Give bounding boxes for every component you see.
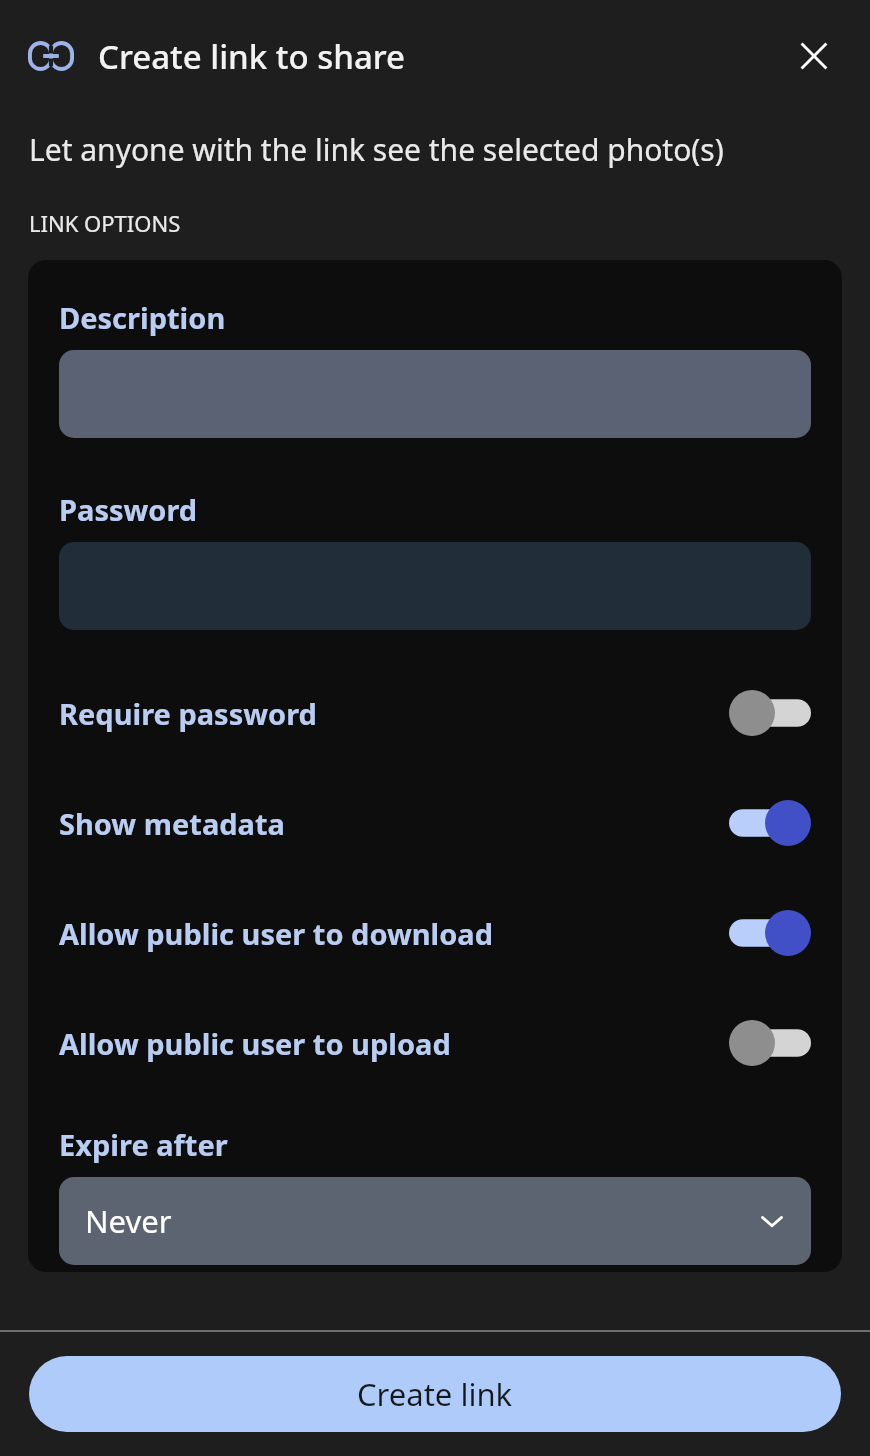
other: Link (28, 41, 74, 71)
staticText: Never (85, 1200, 172, 1242)
staticText: Show metadata (59, 804, 285, 843)
button[interactable]: Off (729, 1020, 811, 1066)
staticText: Allow public user to upload (59, 1024, 451, 1063)
staticText: Expire after (59, 1125, 228, 1164)
staticText: Create link (357, 1373, 513, 1415)
button[interactable]: Close (778, 20, 850, 92)
staticText: Require password (59, 694, 317, 733)
staticText: Create link to share (98, 34, 405, 79)
button[interactable]: Create link (29, 1356, 841, 1432)
button[interactable]: Show metadata (59, 797, 811, 849)
button[interactable]: Description input (59, 350, 811, 438)
button[interactable]: Allow public user to upload (59, 1017, 811, 1069)
button[interactable]: Allow public user to download (59, 907, 811, 959)
button[interactable]: On (729, 800, 811, 846)
button[interactable]: Require password (59, 687, 811, 739)
staticText: LINK OPTIONS (29, 208, 181, 238)
staticText: Let anyone with the link see the selecte… (29, 129, 724, 170)
button[interactable]: On (729, 910, 811, 956)
staticText: Allow public user to download (59, 914, 494, 953)
button[interactable]: Off (729, 690, 811, 736)
staticText: Description (59, 298, 226, 337)
button[interactable]: Never (59, 1177, 811, 1265)
staticText: Password (59, 490, 198, 529)
